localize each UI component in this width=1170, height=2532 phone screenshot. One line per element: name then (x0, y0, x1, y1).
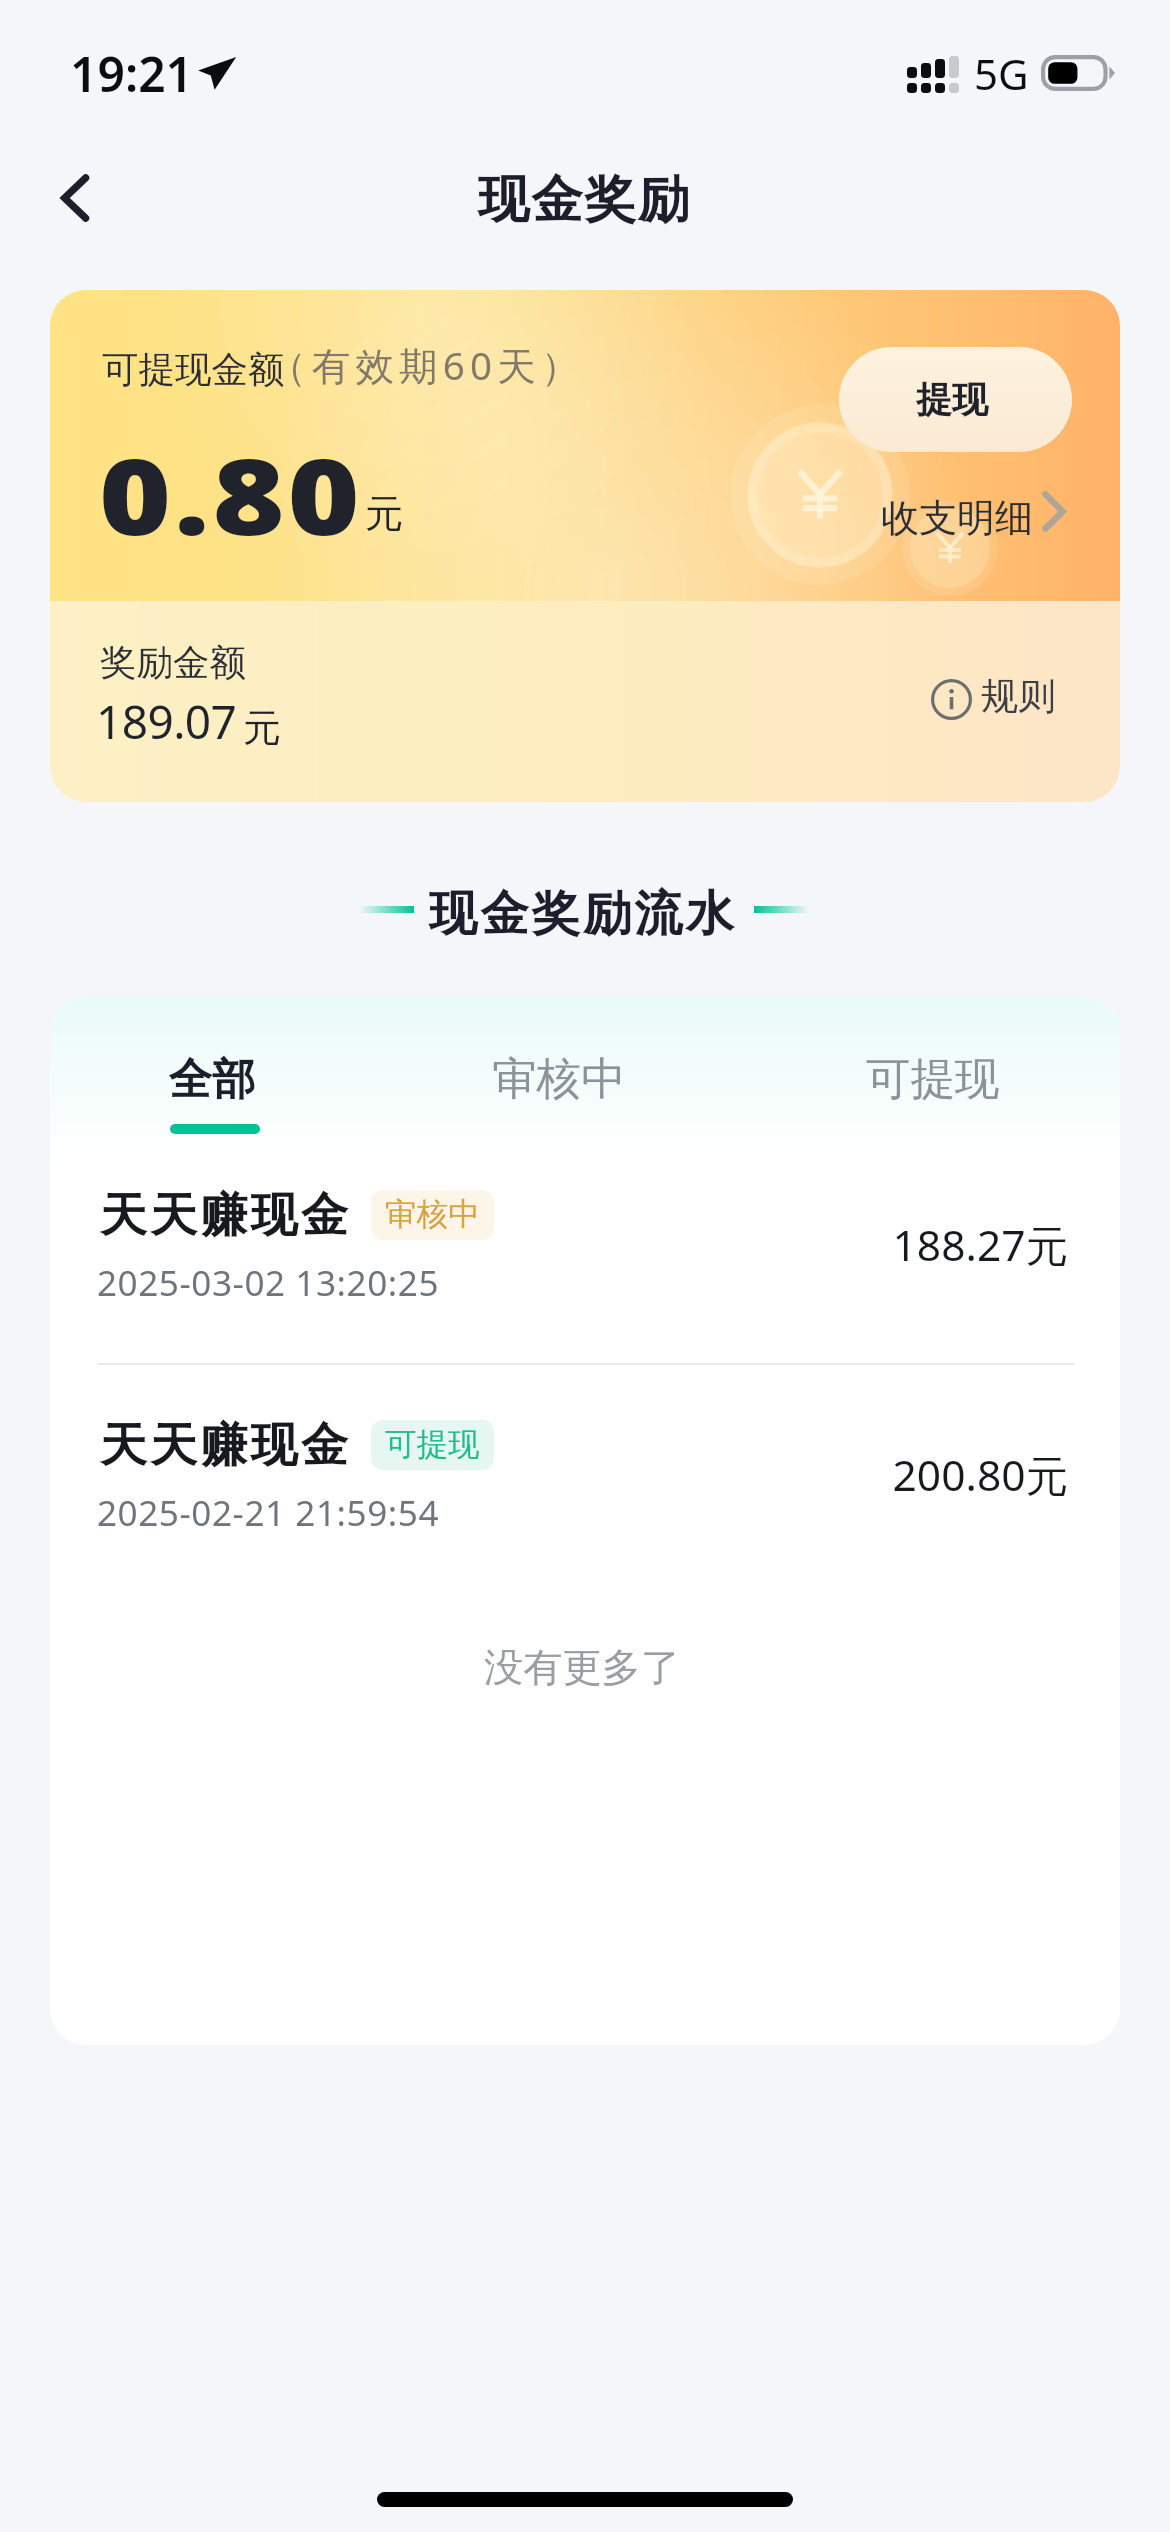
staticText: 2025-03-02 13:20:25 (97, 1258, 440, 1306)
staticText: 收支明细 (881, 494, 1033, 542)
staticText: 规则 (981, 673, 1056, 720)
staticText: 元 (243, 704, 281, 752)
staticText: 天天赚现金 (100, 1416, 352, 1475)
staticText: 200.80元 (868, 1446, 1068, 1504)
staticText: （有效期60天） (268, 339, 585, 392)
staticText: 2025-02-21 21:59:54 (97, 1488, 440, 1536)
staticText: 现金奖励流水 (429, 884, 738, 944)
staticText: 现金奖励 (478, 168, 692, 232)
staticText: 奖励金额 (100, 640, 246, 686)
staticText: 19:21 (70, 41, 194, 106)
staticText: 全部 (169, 1052, 256, 1106)
staticText: 可提现 (866, 1051, 1000, 1107)
button[interactable]: Back (15, 138, 135, 258)
staticText: 可提现金额 (102, 347, 285, 393)
button[interactable]: 天天赚现金 (50, 1134, 1120, 1363)
button[interactable]: 天天赚现金 (50, 1364, 1120, 1593)
staticText: 可提现 (385, 1425, 480, 1465)
staticText: 没有更多了 (484, 1643, 680, 1692)
button[interactable]: 审核中 (381, 1017, 737, 1137)
staticText: 188.27元 (868, 1216, 1068, 1274)
staticText: 0.80 (99, 423, 363, 566)
staticText: 审核中 (492, 1051, 626, 1107)
staticText: 审核中 (385, 1195, 480, 1235)
staticText: 5G (974, 45, 1029, 102)
button[interactable]: 提现 (839, 347, 1072, 452)
button[interactable]: 规则 (870, 661, 1060, 747)
staticText: 提现 (916, 377, 988, 422)
button[interactable]: 可提现 (755, 1017, 1111, 1137)
button[interactable]: 收支明细 (872, 480, 1072, 542)
staticText: 天天赚现金 (100, 1186, 352, 1245)
staticText: 元 (365, 490, 404, 538)
staticText: 189.07 (96, 690, 237, 753)
button[interactable]: 全部 (50, 1017, 390, 1137)
